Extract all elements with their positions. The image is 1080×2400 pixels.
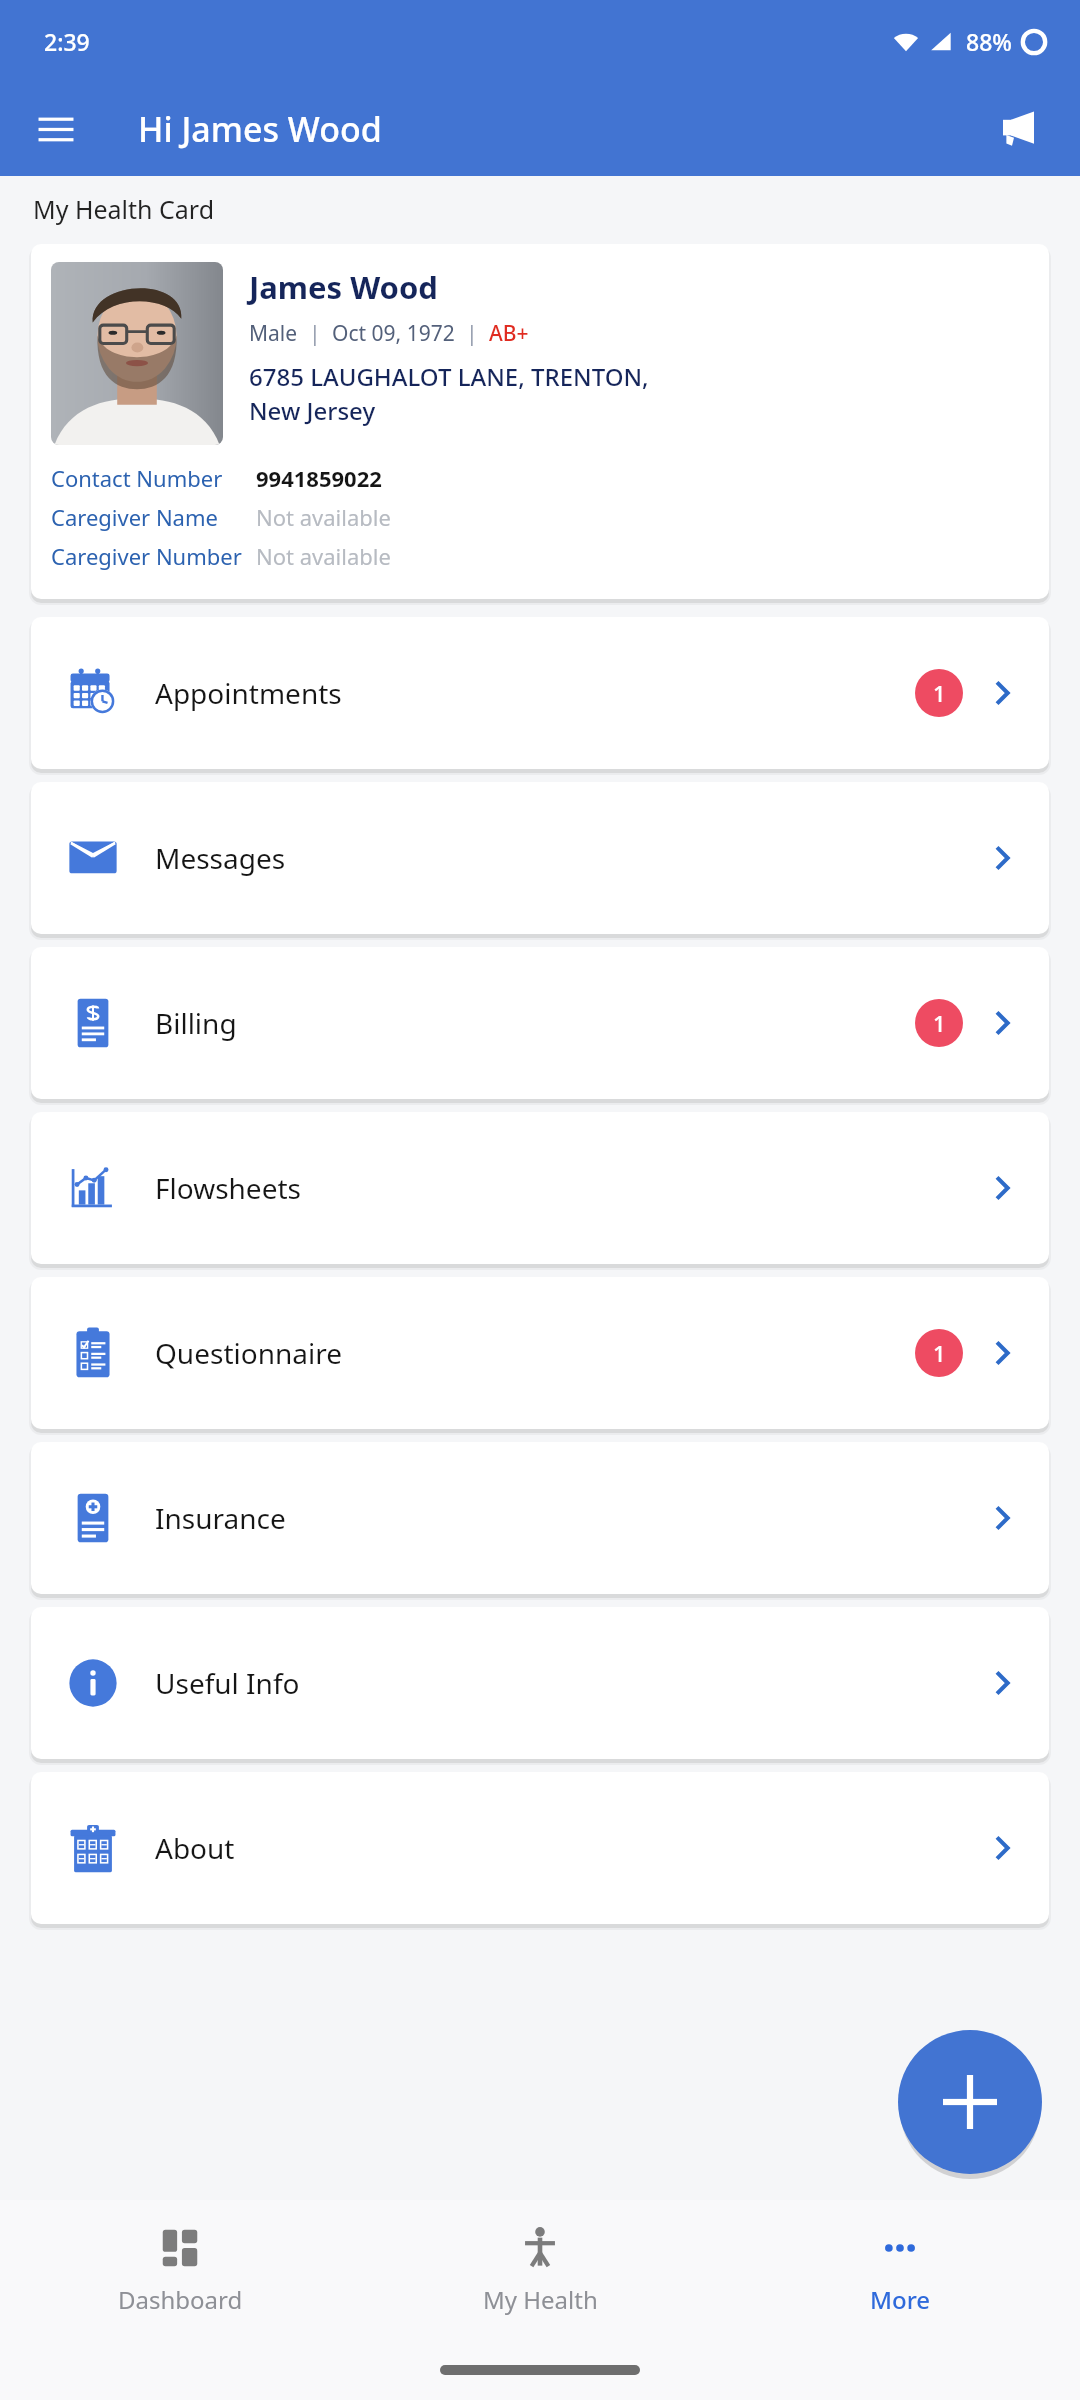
staticText: 1 [933, 678, 946, 708]
staticText: AB+ [489, 319, 529, 348]
staticText: Messages [155, 839, 985, 877]
button[interactable]: Questionnaire [31, 1277, 1049, 1429]
staticText: Insurance [155, 1499, 985, 1537]
button[interactable]: Add [898, 2030, 1042, 2174]
button[interactable]: About [31, 1772, 1049, 1924]
staticText: Appointments [155, 674, 915, 712]
staticText: | [298, 319, 332, 348]
button[interactable]: Billing [31, 947, 1049, 1099]
staticText: Hi James Wood [138, 106, 382, 152]
staticText: Oct 09, 1972 [332, 319, 455, 348]
staticText: Not available [256, 502, 391, 532]
button[interactable]: Messages [31, 782, 1049, 934]
button[interactable]: Announcements [978, 91, 1054, 167]
staticText: My Health [483, 2283, 598, 2316]
button[interactable]: Open navigation menu [22, 95, 90, 163]
button[interactable]: My Health [360, 2200, 720, 2340]
button[interactable]: Flowsheets [31, 1112, 1049, 1264]
staticText: My Health Card [33, 192, 215, 226]
staticText: Caregiver Name [51, 502, 218, 532]
staticText: Male [249, 319, 298, 348]
staticText: Caregiver Number [51, 541, 242, 571]
button[interactable]: Insurance [31, 1442, 1049, 1594]
staticText: Not available [256, 541, 391, 571]
staticText: 1 [933, 1008, 946, 1038]
staticText: Flowsheets [155, 1169, 985, 1207]
staticText: More [870, 2283, 931, 2316]
staticText: 9941859022 [256, 463, 382, 493]
button[interactable]: More [720, 2200, 1080, 2340]
staticText: 1 [933, 1338, 946, 1368]
button[interactable]: James Wood [31, 244, 1049, 599]
staticText: About [155, 1829, 985, 1867]
staticText: James Wood [249, 266, 438, 308]
button[interactable]: Useful Info [31, 1607, 1049, 1759]
button[interactable]: Appointments [31, 617, 1049, 769]
button[interactable]: Dashboard [0, 2200, 360, 2340]
staticText: 88% [966, 26, 1012, 57]
staticText: Useful Info [155, 1664, 985, 1702]
staticText: 2:39 [44, 26, 90, 57]
staticText: 6785 LAUGHALOT LANE, TRENTON, New Jersey [249, 360, 649, 428]
staticText: Contact Number [51, 463, 223, 493]
staticText: | [455, 319, 489, 348]
staticText: Questionnaire [155, 1334, 915, 1372]
staticText: Dashboard [118, 2283, 243, 2316]
staticText: Billing [155, 1004, 915, 1042]
